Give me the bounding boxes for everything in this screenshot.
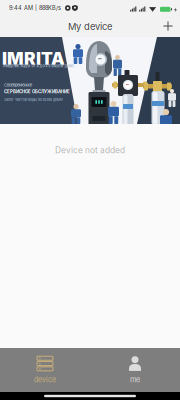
staticText: My device (68, 21, 112, 32)
staticText: залог чистой воды во всём доме! (4, 97, 63, 102)
staticText: Device not added (55, 145, 125, 155)
staticText: IMRITA (2, 48, 65, 69)
staticText: ОЧИЩЕНИЕ ВОДЫ ОТ А ДО Я В ВАШЕМ ДОМЕ (2, 64, 74, 68)
button[interactable]: me (90, 348, 180, 392)
button[interactable]: Add device (156, 15, 180, 37)
staticText: Своевременное (4, 82, 32, 87)
staticText: СЕРВИСНОЕ ОБСЛУЖИВАНИЕ (4, 89, 70, 94)
staticText: device (34, 375, 56, 384)
button[interactable]: device (0, 348, 90, 392)
staticText: 9:44 AM | 888KB/s (9, 5, 61, 11)
staticText: me (130, 375, 140, 384)
